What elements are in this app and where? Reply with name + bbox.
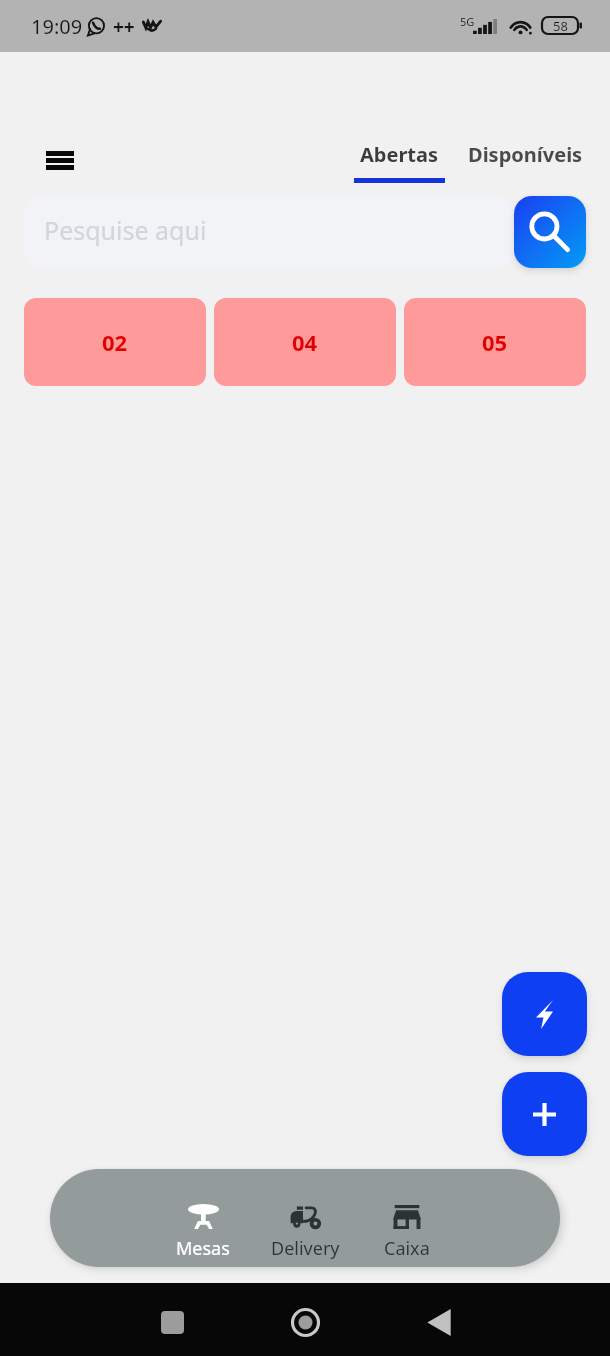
- button[interactable]: Delivery: [254, 1169, 356, 1267]
- staticText: 58: [553, 17, 568, 34]
- button[interactable]: Quick action: [502, 972, 587, 1056]
- staticText: 19:09: [31, 13, 83, 40]
- button[interactable]: Recents: [106, 1290, 239, 1350]
- button[interactable]: Mesas: [152, 1169, 254, 1267]
- staticText: Caixa: [384, 1236, 430, 1261]
- button[interactable]: Disponíveis: [468, 141, 583, 168]
- staticText: Disponíveis: [468, 141, 583, 168]
- button[interactable]: 04: [214, 298, 396, 386]
- button[interactable]: Abertas: [354, 141, 445, 183]
- button[interactable]: Search: [514, 196, 586, 268]
- staticText: Delivery: [271, 1236, 340, 1261]
- button[interactable]: Menu: [40, 140, 80, 180]
- button[interactable]: Back: [372, 1290, 505, 1350]
- staticText: 5G: [460, 14, 475, 29]
- staticText: Pesquise aqui: [44, 213, 207, 247]
- button[interactable]: Add: [502, 1072, 587, 1156]
- staticText: ++: [113, 14, 135, 40]
- staticText: 05: [482, 327, 508, 357]
- button[interactable]: 05: [404, 298, 586, 386]
- staticText: Mesas: [176, 1236, 230, 1261]
- staticText: Abertas: [360, 141, 439, 168]
- staticText: 04: [292, 327, 318, 357]
- button[interactable]: Caixa: [356, 1169, 458, 1267]
- button[interactable]: 02: [24, 298, 206, 386]
- button[interactable]: Pesquise aqui: [24, 196, 514, 268]
- button[interactable]: Home: [239, 1290, 372, 1350]
- staticText: 02: [102, 327, 128, 357]
